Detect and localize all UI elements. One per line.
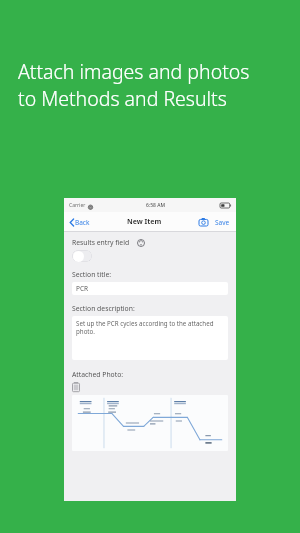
staticText: Results entry field — [72, 238, 130, 247]
button[interactable]: Set up the PCR cycles according to the a… — [72, 316, 228, 360]
staticText: Section title: — [72, 270, 112, 279]
staticText: Attach images and photos — [18, 58, 250, 85]
button[interactable]: Take photo — [197, 216, 210, 228]
staticText: Set up the PCR cycles according to the a… — [76, 319, 224, 335]
staticText: Save — [215, 218, 230, 227]
staticText: Back — [75, 218, 90, 227]
staticText: PCR — [76, 284, 89, 293]
staticText: Attached Photo: — [72, 370, 124, 379]
staticText: to Methods and Results — [18, 85, 227, 112]
staticText: 6:58 AM — [146, 202, 166, 209]
staticText: Section description: — [72, 304, 135, 313]
button[interactable]: Results entry field toggle — [72, 250, 92, 262]
button[interactable]: Delete attached photo — [72, 382, 80, 392]
staticText: New Item — [127, 217, 162, 227]
button[interactable]: Back — [68, 215, 92, 230]
button[interactable]: PCR — [72, 282, 228, 295]
button[interactable]: Save — [213, 215, 232, 230]
staticText: Carrier — [69, 202, 86, 209]
button[interactable]: PCR cycle diagram photo — [72, 395, 228, 451]
button[interactable]: Help — [137, 239, 145, 247]
